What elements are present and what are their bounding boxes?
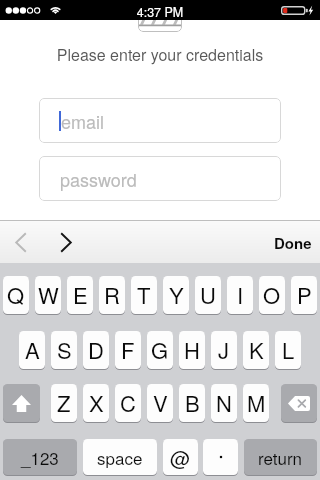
staticText: Z (57, 387, 71, 419)
button[interactable]: U (195, 276, 221, 314)
button[interactable]: return (244, 439, 317, 475)
button[interactable]: B (179, 384, 205, 422)
button[interactable]: R (99, 276, 125, 314)
staticText: 4:37 PM (0, 3, 320, 21)
button[interactable]: email (39, 98, 281, 143)
button[interactable]: F (115, 331, 141, 369)
staticText: B (185, 387, 200, 419)
staticText: W (38, 279, 59, 311)
button[interactable]: X (83, 384, 109, 422)
staticText: M (247, 387, 266, 419)
button[interactable]: J (211, 331, 237, 369)
staticText: E (73, 279, 88, 311)
button[interactable]: Shift (3, 384, 40, 422)
staticText: email (61, 108, 105, 134)
staticText: Q (7, 279, 25, 311)
staticText: @ (170, 443, 191, 472)
button[interactable]: P (291, 276, 317, 314)
button[interactable]: E (67, 276, 93, 314)
staticText: N (216, 387, 232, 419)
button[interactable]: S (51, 331, 77, 369)
button[interactable]: L (275, 331, 301, 369)
staticText: J (218, 334, 230, 366)
staticText: H (184, 334, 200, 366)
button[interactable]: V (147, 384, 173, 422)
button[interactable]: Done (266, 226, 320, 259)
staticText: T (137, 279, 151, 311)
button[interactable]: N (211, 384, 237, 422)
staticText: K (249, 334, 264, 366)
staticText: S (57, 334, 72, 366)
staticText: X (89, 387, 104, 419)
button[interactable]: password (39, 156, 281, 201)
staticText: O (263, 279, 281, 311)
staticText: _123 (21, 445, 59, 469)
button[interactable]: T (131, 276, 157, 314)
button[interactable]: _123 (3, 439, 77, 475)
staticText: P (297, 279, 312, 311)
staticText: password (60, 166, 137, 192)
staticText: F (121, 334, 135, 366)
staticText: D (88, 334, 104, 366)
button[interactable]: Next field (51, 227, 81, 257)
staticText: R (104, 279, 120, 311)
staticText: A (25, 334, 40, 366)
staticText: G (151, 334, 169, 366)
button[interactable]: K (243, 331, 269, 369)
button[interactable]: space (83, 439, 157, 475)
button[interactable]: Q (3, 276, 29, 314)
staticText: C (120, 387, 136, 419)
button[interactable]: D (83, 331, 109, 369)
staticText: L (282, 334, 295, 366)
button[interactable]: G (147, 331, 173, 369)
button[interactable]: W (35, 276, 61, 314)
staticText: Y (169, 279, 184, 311)
button[interactable]: I (227, 276, 253, 314)
button[interactable]: Y (163, 276, 189, 314)
staticText: Done (274, 232, 312, 253)
button[interactable]: M (243, 384, 269, 422)
button[interactable]: Period (203, 439, 238, 475)
button[interactable]: C (115, 384, 141, 422)
staticText: I (237, 279, 244, 311)
staticText: V (153, 387, 168, 419)
button[interactable]: O (259, 276, 285, 314)
staticText: return (258, 445, 303, 469)
button[interactable]: @ (163, 439, 198, 475)
button[interactable]: H (179, 331, 205, 369)
button[interactable]: Z (51, 384, 77, 422)
button[interactable]: Previous field (6, 227, 36, 257)
staticText: space (97, 445, 143, 469)
button[interactable]: A (19, 331, 45, 369)
staticText: U (200, 279, 216, 311)
staticText: Please enter your credentials (0, 43, 320, 66)
button[interactable]: Backspace (281, 384, 317, 422)
